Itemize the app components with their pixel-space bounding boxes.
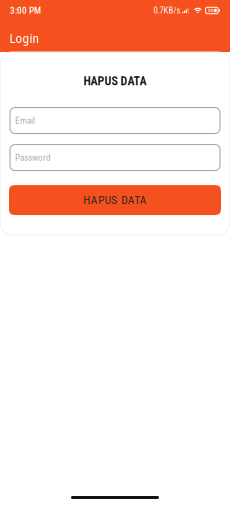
staticText: Login	[9, 31, 38, 46]
button[interactable]: HAPUS DATA	[9, 185, 221, 215]
staticText: HAPUS DATA	[83, 74, 146, 88]
staticText: Email	[15, 115, 35, 126]
staticText: 0.7KB/s	[153, 5, 180, 16]
staticText: Password	[15, 152, 51, 163]
staticText: HAPUS DATA	[83, 193, 147, 207]
staticText: 3:00 PM	[10, 5, 41, 16]
